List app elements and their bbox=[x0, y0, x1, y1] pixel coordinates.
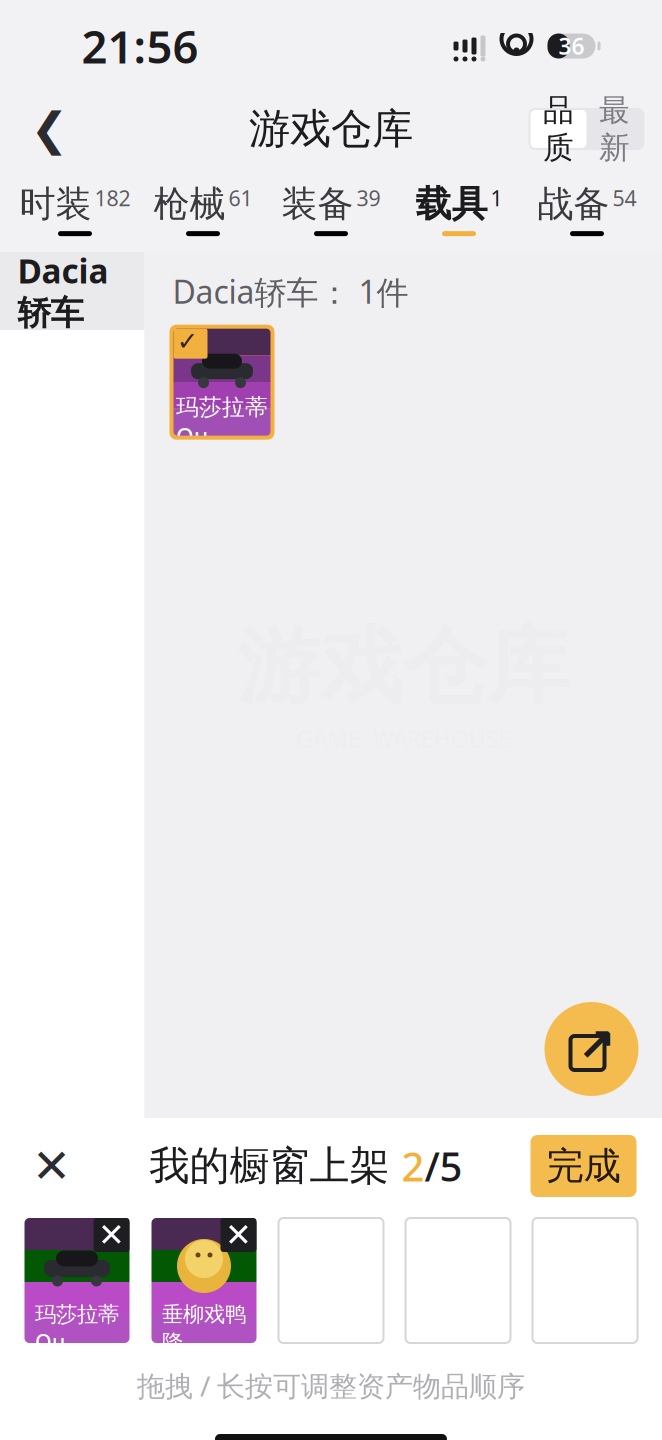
staticText: 枪械 bbox=[153, 182, 225, 226]
staticText: ↗ bbox=[577, 1019, 615, 1071]
staticText: 36 bbox=[558, 31, 584, 61]
button[interactable]: 装备 bbox=[267, 174, 395, 244]
staticText: 时装 bbox=[19, 182, 91, 226]
button[interactable]: 枪械 bbox=[139, 174, 267, 244]
button[interactable]: 战备 bbox=[523, 174, 651, 244]
staticText: 54 bbox=[612, 184, 636, 212]
staticText: 品质 bbox=[543, 91, 574, 167]
staticText: 61 bbox=[228, 184, 252, 212]
staticText: 182 bbox=[94, 184, 130, 212]
button[interactable]: 时装 bbox=[11, 174, 139, 244]
staticText: ✕ bbox=[225, 1217, 252, 1253]
staticText: 最新 bbox=[599, 91, 630, 167]
staticText: 39 bbox=[356, 184, 380, 212]
button[interactable]: Dacia轿车 bbox=[0, 252, 144, 330]
button[interactable]: 玛莎拉蒂 Qu... bbox=[169, 325, 274, 440]
staticText: 玛莎拉蒂 Qu... bbox=[176, 393, 268, 451]
staticText: 21:56 bbox=[81, 16, 198, 76]
staticText: Dacia轿车： 1件 bbox=[172, 270, 408, 313]
staticText: 完成 bbox=[546, 1143, 620, 1189]
button[interactable]: 最新 bbox=[586, 110, 642, 148]
staticText: 拖拽 / 长按可调整资产物品顺序 bbox=[137, 1367, 525, 1404]
staticText: ✕ bbox=[32, 1139, 71, 1192]
button[interactable]: 完成 bbox=[530, 1135, 636, 1197]
staticText: /5 bbox=[424, 1139, 462, 1192]
staticText: 载具 bbox=[415, 182, 487, 226]
button[interactable]: 载具 bbox=[395, 174, 523, 244]
button[interactable]: 垂柳戏鸭降... bbox=[151, 1218, 256, 1343]
staticText: ✓ bbox=[177, 327, 198, 356]
button[interactable]: Share bbox=[544, 1002, 638, 1096]
button[interactable]: 玛莎拉蒂 Qu... bbox=[24, 1218, 129, 1343]
button[interactable]: Empty slot bbox=[405, 1218, 510, 1343]
staticText: Dacia轿车 bbox=[17, 248, 108, 334]
staticText: ❮ bbox=[30, 103, 68, 155]
button[interactable]: 品质 bbox=[530, 110, 586, 148]
staticText: 我的橱窗上架 bbox=[149, 1141, 401, 1190]
button[interactable]: Back bbox=[17, 97, 81, 161]
staticText: 装备 bbox=[281, 182, 353, 226]
staticText: 玛莎拉蒂 Qu... bbox=[35, 1301, 119, 1356]
button[interactable]: Empty slot bbox=[278, 1218, 383, 1343]
staticText: 1 bbox=[490, 184, 502, 212]
staticText: 垂柳戏鸭降... bbox=[162, 1301, 246, 1356]
staticText: 2 bbox=[401, 1139, 424, 1192]
staticText: 战备 bbox=[537, 182, 609, 226]
staticText: ✕ bbox=[98, 1217, 125, 1253]
button[interactable]: Empty slot bbox=[532, 1218, 637, 1343]
button[interactable]: Close bbox=[21, 1136, 81, 1196]
staticText: 游戏仓库 bbox=[249, 104, 413, 154]
